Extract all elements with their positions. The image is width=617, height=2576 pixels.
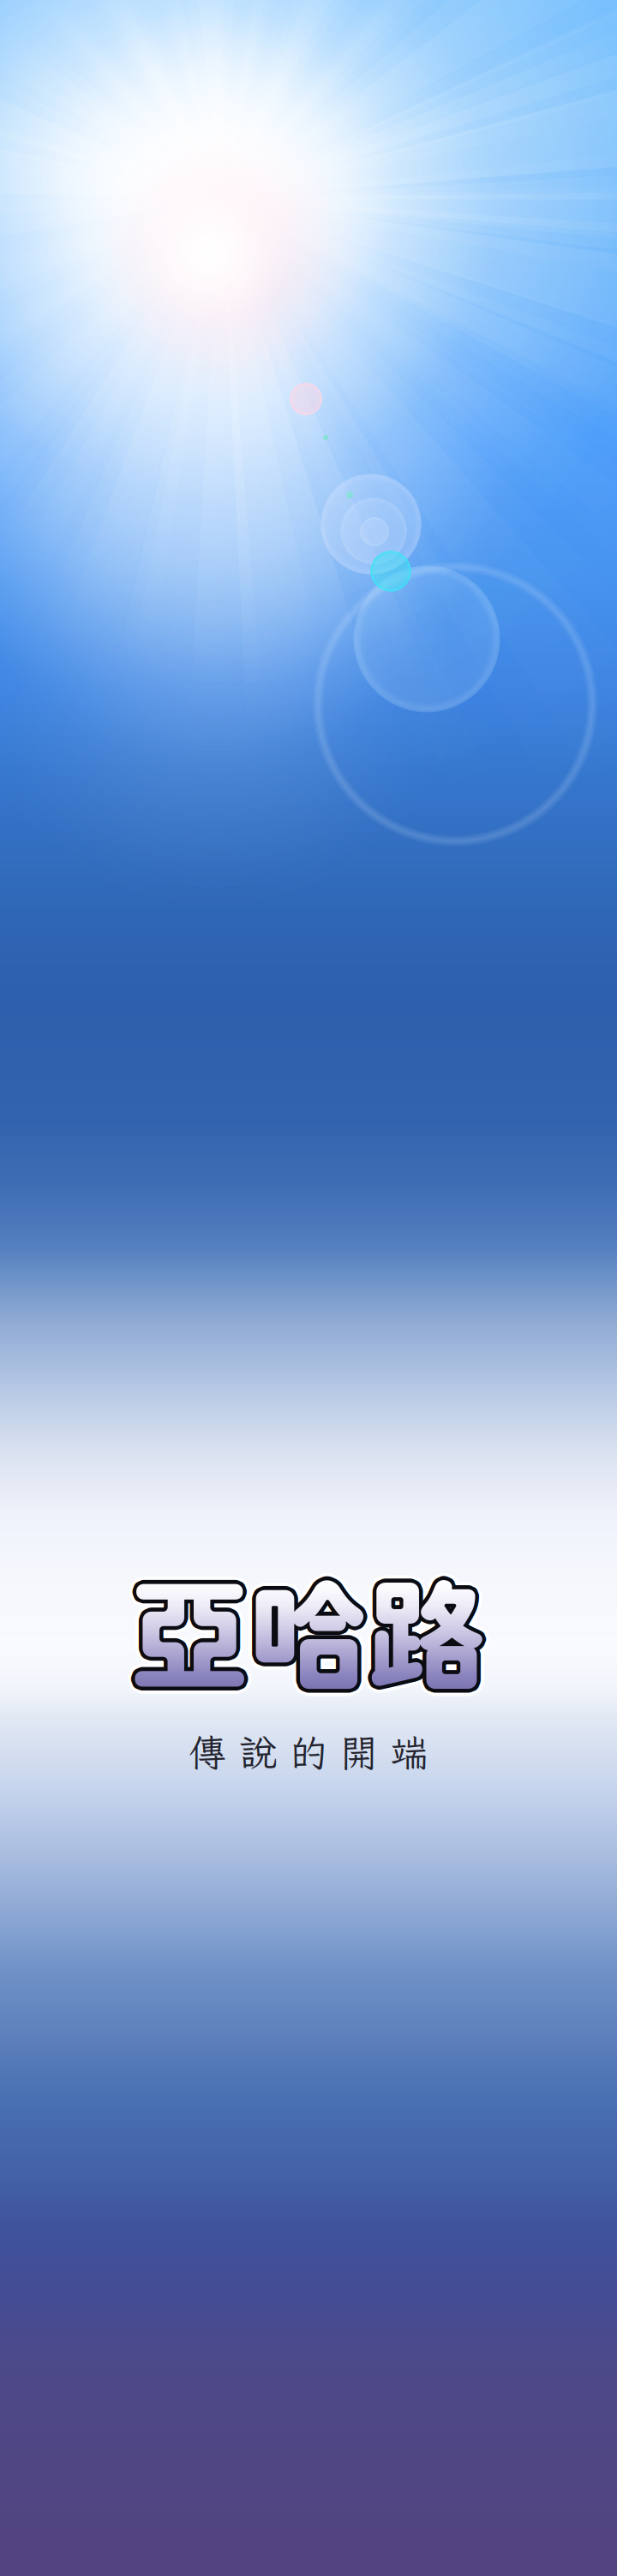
staticText: 亞哈路 bbox=[127, 1562, 484, 1702]
staticText: 傳 說 的 開 端 bbox=[189, 1727, 428, 1777]
staticText: 亞哈路 bbox=[127, 1568, 484, 1708]
staticText: 亞哈路 bbox=[130, 1558, 487, 1698]
staticText: 亞哈路 bbox=[133, 1568, 490, 1708]
staticText: 亞哈路 bbox=[125, 1570, 482, 1710]
staticText: 亞哈路 bbox=[135, 1560, 492, 1700]
staticText: 亞哈路 bbox=[130, 1561, 487, 1701]
staticText: 亞哈路 bbox=[134, 1565, 491, 1705]
staticText: 亞哈路 bbox=[123, 1565, 480, 1705]
staticText: 亞哈路 bbox=[130, 1572, 487, 1712]
staticText: 亞哈路 bbox=[133, 1562, 490, 1702]
staticText: 亞哈路 bbox=[130, 1569, 487, 1709]
staticText: 亞哈路 bbox=[137, 1565, 494, 1705]
staticText: 亞哈路 bbox=[125, 1560, 482, 1700]
staticText: 亞哈路 bbox=[126, 1565, 483, 1705]
staticText: 亞哈路 bbox=[135, 1570, 492, 1710]
